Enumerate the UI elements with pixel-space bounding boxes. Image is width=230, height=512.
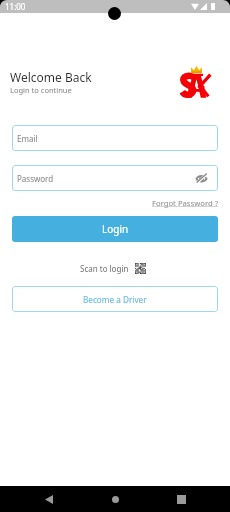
staticText: Login to continue xyxy=(10,85,72,95)
staticText: Welcome Back xyxy=(10,69,92,85)
staticText: Scan to login xyxy=(80,263,129,274)
button[interactable]: Forgot Password ? xyxy=(140,196,218,209)
staticText: Forgot Password ? xyxy=(152,198,218,208)
button[interactable]: Back xyxy=(28,486,69,512)
button[interactable]: Show password xyxy=(194,171,208,185)
button[interactable]: Password xyxy=(12,165,218,191)
staticText: Password xyxy=(17,173,54,184)
staticText: Become a Driver xyxy=(83,294,147,305)
staticText: 11:00 xyxy=(5,1,26,12)
button[interactable]: Home xyxy=(95,486,135,512)
staticText: Login xyxy=(102,222,129,236)
button[interactable]: Recents xyxy=(161,486,201,512)
button[interactable]: Become a Driver xyxy=(12,286,218,312)
staticText: Email xyxy=(17,133,38,144)
button[interactable]: Email xyxy=(12,125,218,151)
button[interactable]: Login xyxy=(12,216,218,242)
button[interactable]: Scan to login xyxy=(80,261,146,275)
